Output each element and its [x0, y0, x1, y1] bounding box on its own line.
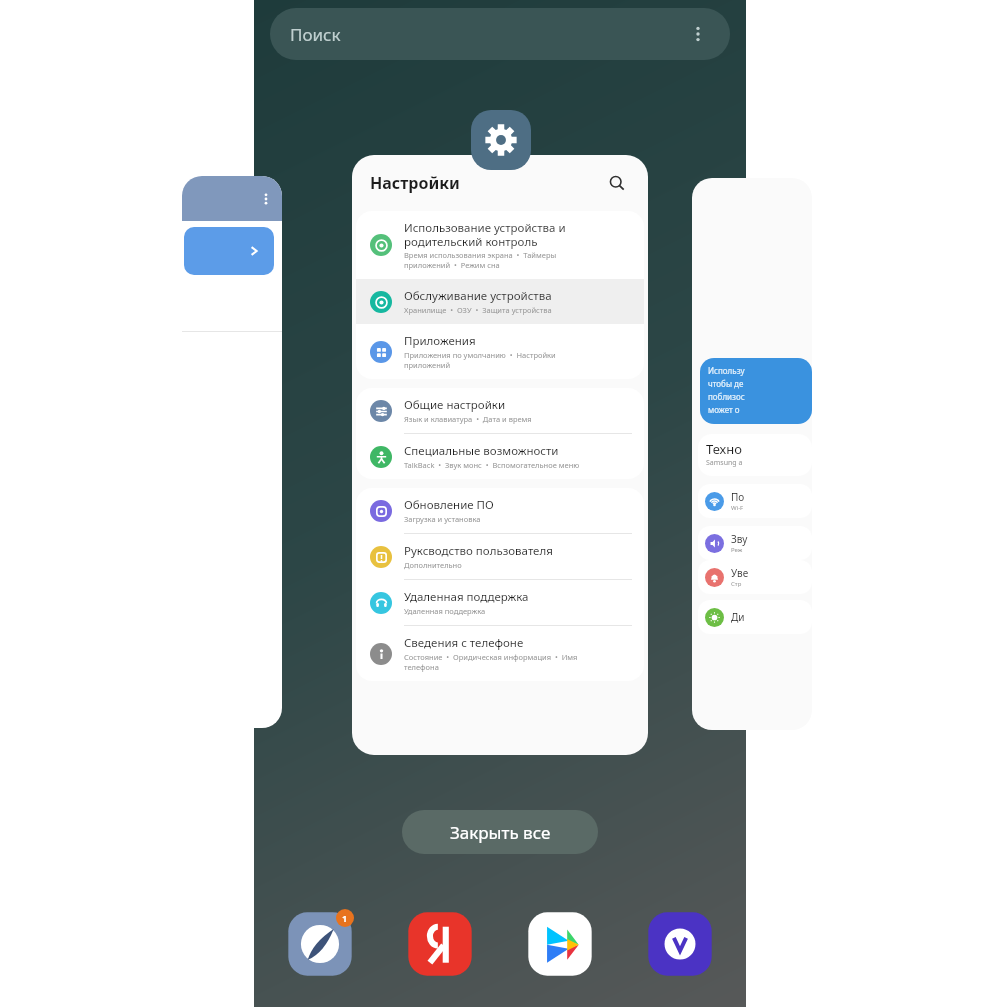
staticText: Приложения по умолчанию • Настройки прил…: [404, 350, 556, 370]
button[interactable]: Использу: [692, 178, 812, 730]
button[interactable]: Обслуживание устройства: [356, 279, 644, 324]
staticText: Приложения: [404, 333, 476, 349]
staticText: Поиск: [290, 23, 341, 46]
button[interactable]: Ди: [698, 600, 812, 634]
staticText: Удаленная поддержка: [404, 606, 486, 616]
staticText: Ди: [731, 610, 745, 624]
button[interactable]: Google Play: [524, 908, 596, 980]
staticText: Удаленная поддержка: [404, 589, 529, 605]
button[interactable]: Настройки: [352, 155, 648, 755]
staticText: чтобы де: [708, 378, 744, 389]
staticText: Общие настройки: [404, 397, 506, 413]
button[interactable]: Приложения: [356, 324, 644, 379]
button[interactable]: Settings app: [471, 110, 531, 170]
staticText: Закрыть все: [450, 821, 551, 844]
staticText: Настройки: [370, 172, 460, 194]
button[interactable]: Уве: [698, 560, 812, 594]
button[interactable]: Сведения с телефоне: [356, 626, 644, 681]
staticText: Использование устройства и родительский …: [404, 220, 566, 249]
staticText: Реж: [731, 546, 743, 554]
button[interactable]: More options: [686, 22, 710, 46]
staticText: 1: [342, 912, 348, 924]
button[interactable]: Viber: [644, 908, 716, 980]
staticText: Загрузка и установка: [404, 514, 481, 524]
staticText: поблизос: [708, 391, 745, 402]
button[interactable]: Закрыть все: [402, 810, 598, 854]
staticText: Время использования экрана • Таймеры при…: [404, 250, 557, 270]
staticText: Техно: [706, 440, 742, 458]
button[interactable]: Search settings: [604, 170, 630, 196]
staticText: Обновление ПО: [404, 497, 494, 513]
staticText: Руксводство пользователя: [404, 543, 553, 559]
staticText: Уве: [731, 566, 749, 580]
staticText: Wi-F: [731, 504, 744, 512]
staticText: Хранилище • ОЗУ • Защита устройства: [404, 305, 552, 315]
button[interactable]: Общие настройки: [356, 388, 644, 433]
staticText: Samsung a: [706, 458, 743, 468]
button[interactable]: Поиск: [270, 8, 730, 60]
button[interactable]: Обновление ПО: [356, 488, 644, 533]
staticText: Язык и клавиатура • Дата и время: [404, 414, 532, 424]
staticText: Сведения с телефоне: [404, 635, 524, 651]
staticText: По: [731, 490, 745, 504]
button[interactable]: Зву: [698, 526, 812, 560]
button[interactable]: Samsung Notes: [284, 908, 356, 980]
button[interactable]: Next: [182, 176, 282, 728]
staticText: Зву: [731, 532, 748, 546]
staticText: Дополнительно: [404, 560, 462, 570]
staticText: Обслуживание устройства: [404, 288, 552, 304]
staticText: Стр: [731, 580, 742, 588]
button[interactable]: По: [698, 484, 812, 518]
button[interactable]: Использование устройства и родительский …: [356, 211, 644, 279]
staticText: Специальные возможности: [404, 443, 559, 459]
staticText: Состояние • Оридическая информация • Имя…: [404, 652, 578, 672]
button[interactable]: Next: [184, 227, 274, 275]
button[interactable]: Yandex: [404, 908, 476, 980]
button[interactable]: Специальные возможности: [356, 434, 644, 479]
staticText: TalkBack • Звук монс • Вспомогательное м…: [404, 460, 580, 470]
button[interactable]: Руксводство пользователя: [356, 534, 644, 579]
staticText: Использу: [708, 365, 745, 376]
button[interactable]: Удаленная поддержка: [356, 580, 644, 625]
staticText: может о: [708, 404, 740, 415]
